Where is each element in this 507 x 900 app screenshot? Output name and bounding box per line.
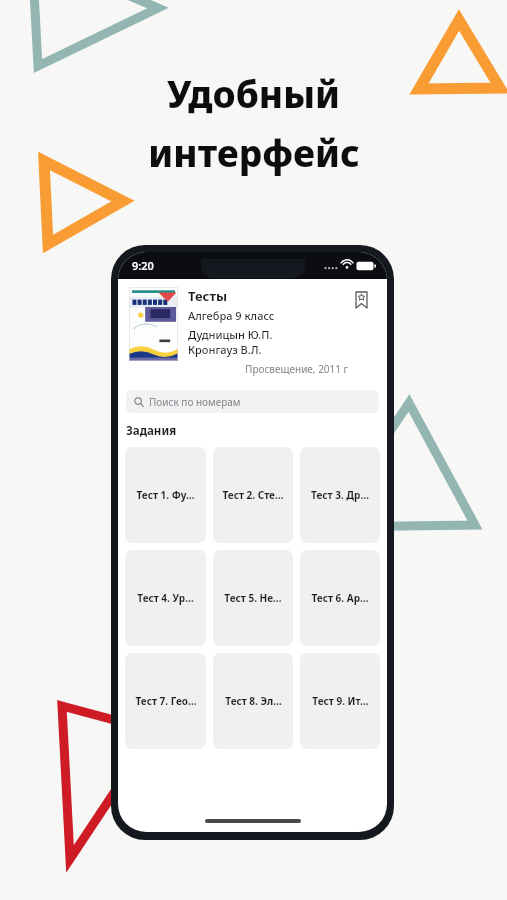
staticText: Тест 8. Эл… — [225, 694, 282, 708]
staticText: Тест 9. Ит… — [312, 694, 369, 708]
staticText: Удобный — [167, 68, 340, 118]
staticText: Дудницын Ю.П. — [188, 327, 273, 342]
staticText: Тест 2. Сте… — [222, 488, 284, 502]
staticText: интерфейс — [148, 127, 360, 177]
staticText: Алгебра 9 класс — [188, 308, 275, 323]
button[interactable]: Тест 9. Ит… — [300, 653, 380, 749]
staticText: Тесты — [188, 287, 228, 305]
button[interactable]: Тест 1. Фу… — [125, 447, 206, 543]
staticText: Кронгауз В.Л. — [188, 342, 262, 357]
button[interactable]: Тест 4. Ур… — [125, 550, 206, 646]
staticText: Просвещение, 2011 г — [188, 362, 348, 376]
staticText: Тест 3. Др… — [311, 488, 369, 502]
button[interactable]: Тест 2. Сте… — [213, 447, 293, 543]
button[interactable]: Тест 8. Эл… — [213, 653, 293, 749]
staticText: Тест 4. Ур… — [137, 591, 194, 605]
button[interactable]: Тест 5. Не… — [213, 550, 293, 646]
staticText: Задания — [126, 423, 177, 439]
button[interactable]: Тест 6. Ар… — [300, 550, 380, 646]
button[interactable]: Тест 7. Гео… — [125, 653, 206, 749]
button[interactable]: Поиск по номерам — [126, 390, 379, 413]
staticText: 9:20 — [132, 258, 154, 273]
staticText: Поиск по номерам — [149, 395, 241, 409]
button[interactable]: Тест 3. Др… — [300, 447, 380, 543]
staticText: Тест 5. Не… — [224, 591, 282, 605]
button[interactable]: Bookmark — [348, 287, 374, 313]
staticText: Тест 1. Фу… — [136, 488, 195, 502]
staticText: Тест 7. Гео… — [135, 694, 197, 708]
staticText: Тест 6. Ар… — [311, 591, 369, 605]
